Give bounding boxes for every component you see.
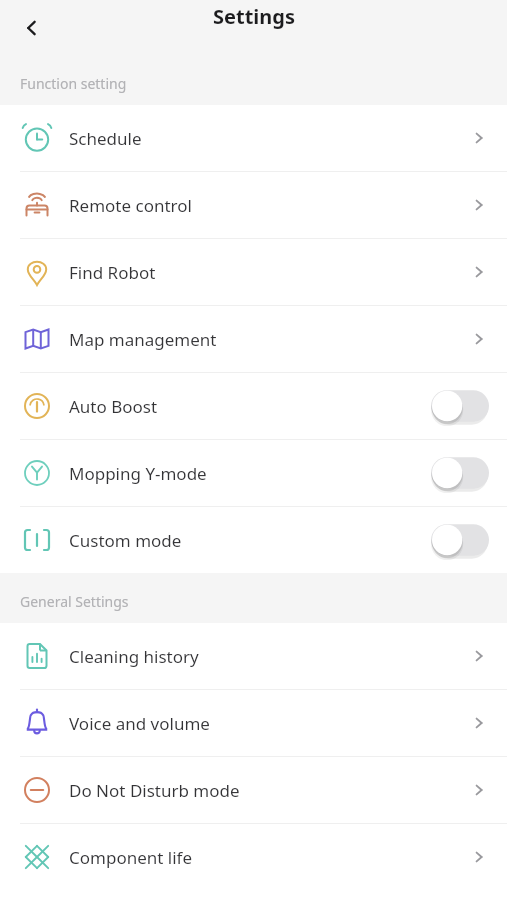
button[interactable]: Back bbox=[10, 6, 54, 50]
button[interactable]: Custom mode bbox=[0, 507, 507, 573]
staticText: Cleaning history bbox=[69, 645, 199, 668]
button[interactable]: Find Robot bbox=[0, 239, 507, 305]
button[interactable]: Remote control bbox=[0, 172, 507, 238]
staticText: General Settings bbox=[20, 592, 129, 611]
staticText: Component life bbox=[69, 846, 193, 869]
button[interactable]: Auto Boost bbox=[0, 373, 507, 439]
button[interactable]: Component life bbox=[0, 824, 507, 890]
staticText: Map management bbox=[69, 328, 217, 351]
staticText: Function setting bbox=[20, 74, 127, 93]
button[interactable]: Map management bbox=[0, 306, 507, 372]
staticText: Settings bbox=[213, 3, 295, 30]
staticText: Remote control bbox=[69, 194, 192, 217]
button[interactable]: Schedule bbox=[0, 105, 507, 171]
staticText: Find Robot bbox=[69, 261, 156, 284]
staticText: Mopping Y-mode bbox=[69, 462, 207, 485]
staticText: Auto Boost bbox=[69, 395, 158, 418]
staticText: Voice and volume bbox=[69, 712, 210, 735]
staticText: Custom mode bbox=[69, 529, 182, 552]
button[interactable]: Voice and volume bbox=[0, 690, 507, 756]
button[interactable]: Cleaning history bbox=[0, 623, 507, 689]
staticText: Schedule bbox=[69, 127, 142, 150]
staticText: Do Not Disturb mode bbox=[69, 779, 240, 802]
button[interactable]: Do Not Disturb mode bbox=[0, 757, 507, 823]
button[interactable]: Mopping Y-mode bbox=[0, 440, 507, 506]
